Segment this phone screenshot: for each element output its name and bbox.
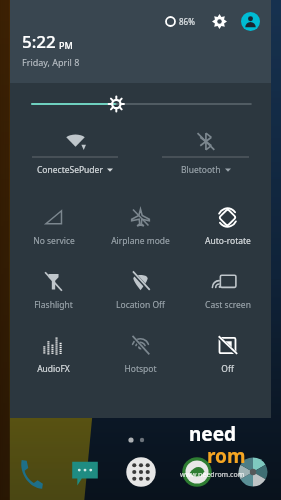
staticText: AudioFX (37, 363, 70, 375)
button[interactable]: Camera (225, 444, 281, 500)
button[interactable]: Phone (0, 444, 57, 500)
staticText: Hotspot (124, 363, 157, 375)
button[interactable]: Screen timeout off (184, 325, 271, 389)
staticText: 86% (179, 16, 195, 27)
button[interactable]: Messages (57, 444, 113, 500)
staticText: Cast screen (205, 299, 251, 311)
button[interactable]: Auto rotate (184, 197, 271, 261)
staticText: Friday, April 8 (22, 56, 80, 68)
button[interactable]: Battery 86 percent (163, 14, 197, 29)
staticText: No service (33, 235, 75, 247)
staticText: Auto-rotate (205, 235, 251, 247)
staticText: need (189, 421, 237, 447)
button[interactable]: Airplane mode (97, 197, 184, 261)
staticText: ConecteSePuder (37, 164, 103, 176)
staticText: Bluetooth (181, 164, 221, 176)
staticText: 5:22 (22, 30, 56, 53)
staticText: Off (221, 363, 234, 375)
button[interactable]: Hotspot (97, 325, 184, 389)
button[interactable]: All apps (113, 444, 169, 500)
button[interactable]: Settings (209, 11, 229, 31)
button[interactable]: Flashlight (10, 261, 97, 325)
button[interactable]: User profile (239, 10, 261, 32)
button[interactable]: Location off (97, 261, 184, 325)
staticText: Location Off (116, 299, 165, 311)
button[interactable]: Bluetooth (140, 125, 271, 187)
button[interactable]: Cast screen (184, 261, 271, 325)
button[interactable]: 5:22 (22, 30, 80, 68)
button[interactable]: Wi-Fi (10, 125, 140, 187)
staticText: rom (207, 443, 246, 469)
staticText: Flashlight (34, 299, 73, 311)
button[interactable]: Audio FX (10, 325, 97, 389)
button[interactable]: No service (10, 197, 97, 261)
button[interactable]: Brightness (10, 83, 271, 125)
staticText: Airplane mode (111, 235, 170, 247)
button[interactable]: Browser (169, 444, 225, 500)
staticText: www.needrom.com (180, 470, 245, 480)
staticText: PM (59, 39, 73, 51)
